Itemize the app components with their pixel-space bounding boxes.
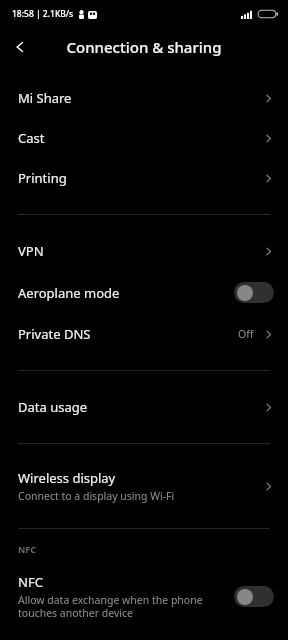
button[interactable]: Back: [0, 28, 40, 66]
button[interactable]: Toggle: [234, 282, 274, 303]
button[interactable]: Data usage: [0, 387, 288, 427]
button[interactable]: Printing: [0, 158, 288, 198]
staticText: Private DNS: [18, 325, 91, 343]
button[interactable]: Wireless display: [0, 460, 288, 512]
staticText: Connection & sharing: [66, 37, 222, 57]
button[interactable]: VPN: [0, 231, 288, 271]
staticText: Printing: [18, 169, 67, 187]
button[interactable]: Cast: [0, 118, 288, 158]
staticText: Connect to a display using Wi-Fi: [18, 489, 175, 503]
staticText: NFC: [18, 543, 37, 555]
button[interactable]: NFC: [0, 565, 288, 628]
staticText: Allow data exchange when the phone touch…: [18, 593, 203, 620]
staticText: Aeroplane mode: [18, 284, 120, 302]
staticText: Wireless display: [18, 469, 116, 487]
button[interactable]: Aeroplane mode: [0, 271, 288, 314]
button[interactable]: Toggle: [234, 586, 274, 607]
staticText: Cast: [18, 129, 45, 147]
button[interactable]: Mi Share: [0, 78, 288, 118]
staticText: Mi Share: [18, 89, 72, 107]
staticText: Off: [238, 327, 254, 341]
button[interactable]: Private DNS: [0, 314, 288, 354]
staticText: Data usage: [18, 398, 88, 416]
staticText: 18:58 | 2.1KB/s: [12, 8, 74, 20]
staticText: VPN: [18, 242, 44, 260]
staticText: NFC: [18, 573, 43, 591]
